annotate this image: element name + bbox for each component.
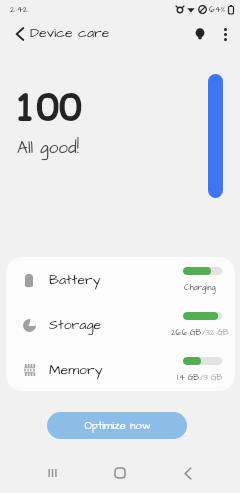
staticText: Battery — [49, 270, 101, 289]
button[interactable]: Storage — [6, 302, 235, 347]
staticText: Optimize now — [84, 418, 151, 433]
staticText: /32 GB — [202, 327, 229, 338]
button[interactable]: Recents — [34, 455, 70, 491]
staticText: Storage — [49, 315, 102, 334]
staticText: 1.4 GB — [177, 372, 200, 383]
button[interactable]: More options — [213, 22, 237, 46]
button[interactable]: Memory — [6, 347, 235, 391]
button[interactable]: Home — [102, 455, 138, 491]
button[interactable]: Back — [170, 455, 206, 491]
staticText: Device care — [30, 23, 110, 42]
button[interactable]: Battery — [6, 257, 235, 302]
button[interactable]: Tips — [187, 21, 213, 47]
button[interactable]: Back — [6, 20, 34, 48]
button[interactable]: Optimize now — [47, 412, 187, 439]
staticText: 26.6 GB — [171, 327, 202, 338]
staticText: Charging — [184, 282, 216, 293]
staticText: /3 GB — [200, 372, 223, 383]
staticText: 100 — [14, 81, 82, 133]
staticText: Memory — [49, 360, 103, 379]
staticText: 2:42 — [10, 3, 28, 16]
staticText: 64% — [209, 3, 226, 16]
staticText: All good! — [17, 136, 79, 160]
